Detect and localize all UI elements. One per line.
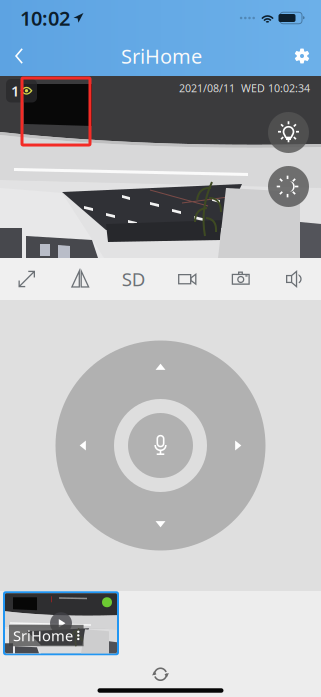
button[interactable]: Record [160, 258, 214, 300]
button[interactable]: Sound [267, 258, 321, 300]
button[interactable]: Full screen [0, 258, 53, 300]
button[interactable]: Refresh [137, 663, 183, 685]
staticText: SD [122, 267, 146, 291]
button[interactable]: SriHome [3, 591, 119, 655]
button[interactable]: Pan up [134, 340, 186, 398]
button[interactable]: Mirror [53, 258, 107, 300]
staticText: SriHome [121, 43, 202, 69]
button[interactable]: Light [268, 112, 309, 153]
button[interactable]: Back [0, 36, 40, 76]
button[interactable]: SD [107, 258, 160, 300]
staticText: 1 [11, 81, 19, 100]
staticText: SriHome [13, 626, 73, 645]
button[interactable]: Pan right [207, 419, 265, 471]
button[interactable]: Settings [283, 36, 321, 76]
staticText: 2021/08/11 WED 10:02:34 [179, 81, 310, 95]
button[interactable]: Pan down [134, 492, 186, 550]
button[interactable]: Snapshot [214, 258, 267, 300]
button[interactable]: Pan left [55, 419, 113, 471]
button[interactable]: Day night mode [268, 166, 309, 207]
button[interactable]: Talk [114, 399, 207, 492]
staticText: 10:02 [20, 5, 70, 31]
